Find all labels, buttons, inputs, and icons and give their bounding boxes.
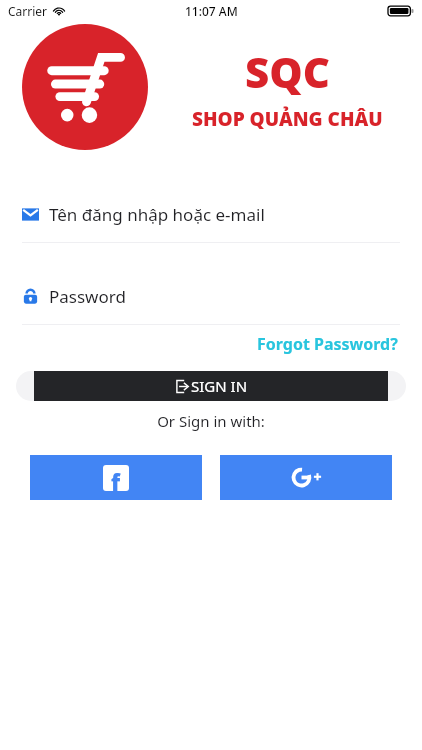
staticText: SHOP QUẢNG CHÂU: [192, 106, 383, 132]
staticText: SQC: [245, 43, 330, 100]
button[interactable]: Tên đăng nhập hoặc e-mail: [22, 200, 400, 228]
button[interactable]: Sign in with Facebook: [30, 455, 202, 500]
staticText: Password: [49, 285, 126, 308]
button[interactable]: Password: [22, 282, 400, 310]
button[interactable]: Forgot Password?: [253, 329, 402, 359]
staticText: Forgot Password?: [257, 333, 398, 355]
staticText: Carrier: [8, 3, 48, 19]
staticText: 11:07 AM: [185, 3, 238, 19]
button[interactable]: SIGN IN: [34, 371, 388, 401]
staticText: f: [111, 467, 121, 491]
button[interactable]: Sign in with Google Plus: [220, 455, 392, 500]
staticText: Or Sign in with:: [0, 411, 422, 431]
staticText: Tên đăng nhập hoặc e-mail: [49, 203, 265, 226]
staticText: SIGN IN: [191, 376, 248, 396]
